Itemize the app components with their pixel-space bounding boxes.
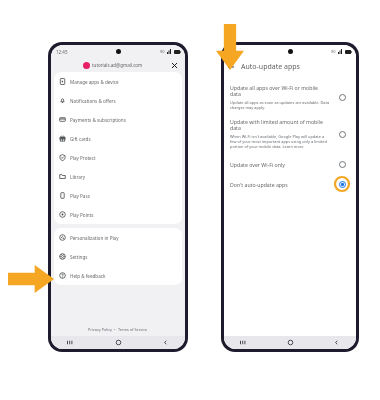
staticText: 90 (160, 49, 165, 54)
button[interactable]: Help & feedback (54, 266, 182, 285)
staticText: Gift cards (70, 136, 91, 142)
staticText: Play Pass (70, 193, 90, 199)
button[interactable]: Personalization in Play (54, 228, 182, 247)
button[interactable]: Play Pass (54, 186, 182, 205)
staticText: Payments & subscriptions (70, 117, 126, 123)
button[interactable]: Notifications & offers (54, 91, 182, 110)
staticText: 90 (331, 49, 336, 54)
staticText: Update all apps over Wi-Fi or mobile dat… (230, 84, 330, 98)
button[interactable]: Update over Wi-Fi only (224, 155, 356, 173)
staticText: 12:45 (56, 49, 68, 55)
staticText: When Wi-Fi isn't available, Google Play … (230, 134, 330, 149)
staticText: • (112, 327, 118, 332)
staticText: Play Protect (70, 155, 96, 161)
button[interactable]: Privacy Policy (88, 327, 112, 332)
button[interactable]: Library (54, 167, 182, 186)
staticText: Play Points (70, 212, 94, 218)
staticText: Settings (70, 254, 88, 260)
staticText: Don't auto-update apps (230, 181, 288, 188)
button[interactable]: Update all apps over Wi-Fi or mobile dat… (224, 83, 356, 111)
staticText: tutorials.ad@gmail.com (92, 62, 143, 68)
button[interactable]: Update with limited amount of mobile dat… (224, 117, 356, 150)
button[interactable]: Back (224, 60, 237, 73)
staticText: Library (70, 174, 86, 180)
button[interactable]: Manage apps & device (54, 72, 182, 91)
button[interactable]: Play Protect (54, 148, 182, 167)
button[interactable]: Play Points (54, 205, 182, 224)
button[interactable]: tutorials.ad@gmail.com (51, 58, 185, 72)
button[interactable]: Settings (54, 247, 182, 266)
staticText: Manage apps & device (70, 79, 119, 85)
button[interactable]: Close (170, 61, 179, 70)
staticText: Notifications & offers (70, 98, 116, 104)
button[interactable]: Payments & subscriptions (54, 110, 182, 129)
staticText: Update with limited amount of mobile dat… (230, 118, 330, 132)
button[interactable]: Terms of Service (118, 327, 148, 332)
button[interactable]: Don't auto-update apps (224, 175, 356, 193)
staticText: Help & feedback (70, 273, 106, 279)
staticText: Update all apps as soon as updates are a… (230, 100, 330, 110)
staticText: Auto-update apps (241, 62, 300, 72)
staticText: Personalization in Play (70, 235, 119, 241)
button[interactable]: Gift cards (54, 129, 182, 148)
staticText: Update over Wi-Fi only (230, 161, 285, 168)
